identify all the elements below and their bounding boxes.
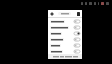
button[interactable]: Status icon xyxy=(106,2,109,5)
button[interactable]: Toggle setting xyxy=(48,24,82,30)
button[interactable]: Toggle setting xyxy=(74,38,80,41)
button[interactable]: Options xyxy=(77,12,80,16)
button[interactable]: Toggle setting xyxy=(74,26,80,29)
button[interactable]: Toggle setting xyxy=(48,42,82,48)
button[interactable]: Status icon xyxy=(101,2,104,5)
button[interactable]: Toggle setting xyxy=(74,44,80,47)
button[interactable]: Toggle setting xyxy=(48,48,82,54)
button[interactable] xyxy=(58,12,71,15)
button[interactable]: Status icon xyxy=(94,2,96,5)
button[interactable] xyxy=(48,54,82,59)
button[interactable]: App icon xyxy=(50,12,54,16)
button[interactable]: Toggle setting xyxy=(48,30,82,36)
button[interactable]: Toggle setting xyxy=(74,32,80,35)
button[interactable]: Toggle setting xyxy=(48,36,82,42)
button[interactable]: Status icon xyxy=(98,2,99,5)
button[interactable]: Toggle setting xyxy=(48,18,82,24)
button[interactable]: Status icon xyxy=(81,2,83,5)
button[interactable]: Status icon xyxy=(89,2,92,5)
button[interactable]: Toggle setting xyxy=(74,50,80,53)
button[interactable]: Status icon xyxy=(85,2,87,5)
button[interactable]: Toggle setting xyxy=(74,20,80,23)
